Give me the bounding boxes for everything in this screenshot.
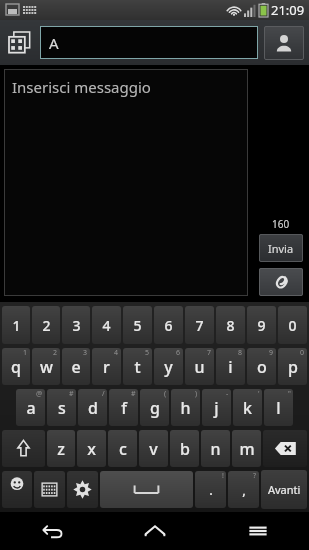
button[interactable]: Invia — [259, 234, 303, 262]
button[interactable]: ( — [140, 389, 169, 426]
staticText: f — [121, 397, 127, 419]
staticText: 160 — [272, 217, 290, 231]
staticText: 4 — [102, 316, 111, 335]
staticText: 5 — [145, 348, 150, 358]
button[interactable]: Symbols — [2, 471, 32, 508]
button[interactable]: Home — [103, 512, 206, 550]
button[interactable]: 2 — [32, 306, 60, 344]
staticText: Inserisci messaggio — [12, 77, 151, 97]
button[interactable]: 3 — [62, 306, 90, 344]
staticText: p — [288, 356, 298, 378]
staticText: s — [58, 397, 66, 419]
staticText: 1 — [12, 316, 21, 335]
button[interactable]: v — [139, 430, 168, 467]
button[interactable]: Inserisci messaggio — [4, 69, 248, 296]
button[interactable]: 7 — [185, 306, 214, 344]
button[interactable]: Contacts grid — [0, 20, 40, 65]
staticText: " — [288, 389, 291, 399]
staticText: 6 — [176, 348, 181, 358]
button[interactable]: 5 — [123, 306, 152, 344]
button[interactable]: Delete — [263, 430, 307, 467]
button[interactable]: x — [77, 430, 106, 467]
button[interactable]: n — [201, 430, 230, 467]
button[interactable]: 0 — [278, 306, 307, 344]
button[interactable]: 6 — [154, 306, 183, 344]
button[interactable]: Menu — [206, 512, 309, 550]
staticText: y — [164, 356, 173, 378]
staticText: z — [57, 438, 65, 460]
button[interactable]: 1 — [2, 306, 30, 344]
button[interactable]: c — [108, 430, 137, 467]
button[interactable]: Settings — [67, 471, 98, 508]
button[interactable]: 9 — [247, 306, 276, 344]
staticText: t — [134, 356, 141, 378]
button[interactable]: " — [264, 389, 293, 426]
staticText: ! — [222, 471, 224, 481]
button[interactable]: Shift — [2, 430, 45, 467]
staticText: 8 — [238, 348, 243, 358]
button[interactable]: 8 — [216, 306, 245, 344]
button[interactable]: Attach — [259, 268, 303, 296]
button[interactable]: 2 — [32, 348, 60, 385]
button[interactable]: - — [202, 389, 231, 426]
staticText: o — [257, 356, 267, 378]
staticText: ) — [195, 389, 198, 399]
button[interactable]: # — [47, 389, 76, 426]
button[interactable]: / — [78, 389, 107, 426]
staticText: i — [228, 356, 233, 378]
button[interactable]: Avanti — [261, 470, 307, 509]
button[interactable]: # — [109, 389, 138, 426]
button[interactable]: 0 — [278, 348, 307, 385]
button[interactable]: 3 — [62, 348, 90, 385]
staticText: k — [243, 397, 252, 419]
staticText: 0 — [288, 316, 297, 335]
staticText: 2 — [42, 316, 51, 335]
staticText: 4 — [114, 348, 119, 358]
button[interactable]: A — [40, 26, 258, 59]
button[interactable]: Pick contact — [264, 26, 304, 60]
staticText: n — [210, 438, 221, 460]
button[interactable]: m — [232, 430, 261, 467]
staticText: r — [103, 356, 110, 378]
button[interactable]: b — [170, 430, 199, 467]
staticText: @ — [36, 389, 43, 399]
staticText: 2 — [53, 348, 58, 358]
button[interactable]: Keyboard layout — [34, 471, 65, 508]
staticText: - — [226, 389, 229, 399]
staticText: j — [214, 397, 219, 419]
button[interactable]: z — [47, 430, 75, 467]
button[interactable]: ' — [233, 389, 262, 426]
button[interactable]: ! — [195, 471, 226, 508]
button[interactable]: @ — [16, 389, 45, 426]
button[interactable]: 4 — [92, 306, 121, 344]
staticText: w — [40, 356, 53, 378]
staticText: # — [131, 389, 136, 399]
staticText: / — [102, 389, 105, 399]
button[interactable]: Space — [100, 471, 193, 508]
button[interactable]: ) — [171, 389, 200, 426]
button[interactable]: ? — [228, 471, 259, 508]
staticText: # — [69, 389, 74, 399]
staticText: l — [276, 397, 281, 419]
button[interactable]: 5 — [123, 348, 152, 385]
staticText: A — [49, 33, 59, 53]
button[interactable]: 6 — [154, 348, 183, 385]
staticText: 21:09 — [271, 1, 305, 19]
staticText: ? — [253, 471, 257, 481]
staticText: m — [239, 438, 255, 460]
staticText: 7 — [207, 348, 212, 358]
button[interactable]: 4 — [92, 348, 121, 385]
staticText: 3 — [83, 348, 88, 358]
staticText: v — [149, 438, 158, 460]
staticText: c — [119, 438, 127, 460]
staticText: ' — [258, 389, 260, 399]
button[interactable]: 9 — [247, 348, 276, 385]
button[interactable]: Back — [0, 512, 103, 550]
staticText: , — [242, 481, 246, 499]
staticText: 0 — [300, 348, 305, 358]
button[interactable]: 1 — [2, 348, 30, 385]
button[interactable]: 7 — [185, 348, 214, 385]
staticText: b — [180, 438, 190, 460]
staticText: x — [87, 438, 96, 460]
button[interactable]: 8 — [216, 348, 245, 385]
